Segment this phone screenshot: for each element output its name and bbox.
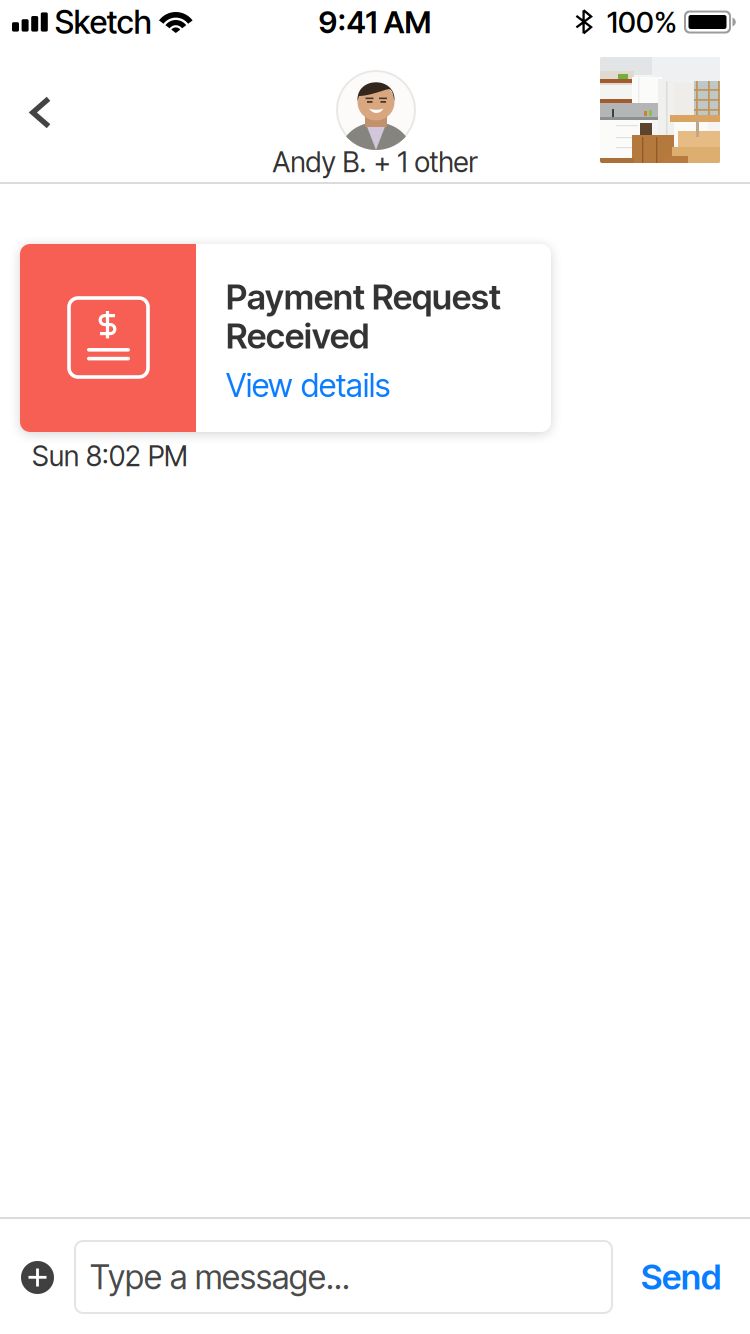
staticText: Andy B. + 1 other	[272, 145, 477, 179]
staticText: 100%	[607, 4, 677, 40]
button[interactable]: Back	[16, 82, 65, 143]
button[interactable]: Add attachment	[10, 1250, 65, 1305]
staticText: 9:41 AM	[318, 3, 431, 40]
button[interactable]: Listing photo	[600, 57, 720, 163]
button[interactable]: Type a message...	[75, 1241, 612, 1313]
staticText: View details	[226, 366, 390, 405]
staticText: Payment Request	[226, 276, 501, 318]
button[interactable]: Send	[628, 1241, 734, 1313]
button[interactable]: Payment Request	[20, 244, 551, 432]
staticText: Sun 8:02 PM	[32, 439, 188, 473]
staticText: Send	[641, 1256, 721, 1298]
staticText: Type a message...	[90, 1257, 350, 1297]
staticText: Sketch	[55, 3, 152, 41]
staticText: Received	[226, 315, 369, 357]
